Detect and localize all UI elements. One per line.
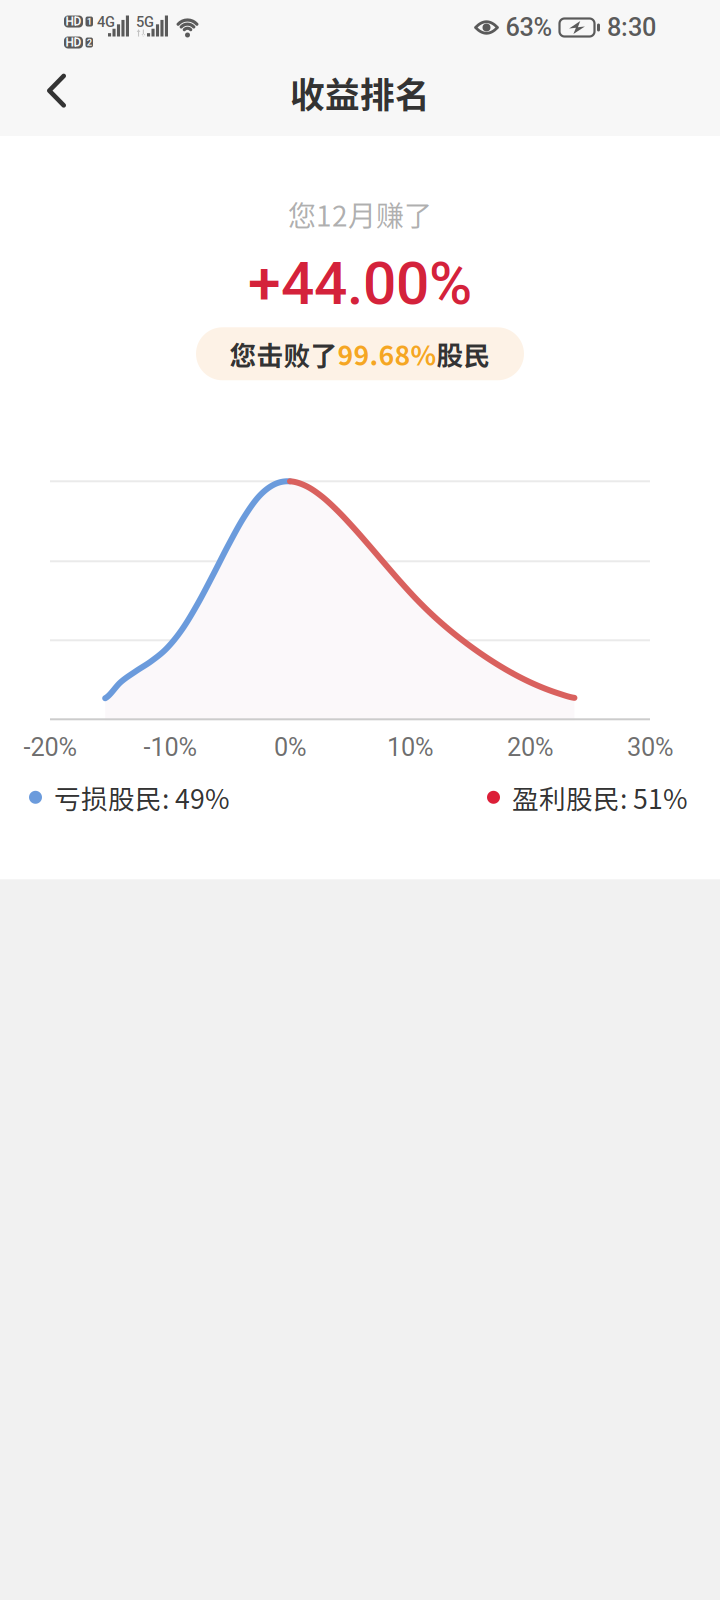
staticText: 盈利股民: 51% bbox=[512, 778, 688, 817]
staticText: 2 bbox=[87, 37, 92, 48]
staticText: 63% bbox=[505, 12, 552, 42]
staticText: 您12月赚了 bbox=[288, 194, 432, 234]
staticText: 30% bbox=[627, 732, 674, 762]
staticText: -20% bbox=[23, 732, 77, 762]
staticText: -10% bbox=[143, 732, 197, 762]
staticText: 20% bbox=[507, 732, 554, 762]
staticText: HD bbox=[65, 14, 81, 29]
staticText: 股民 bbox=[436, 334, 490, 373]
staticText: 您击败了 bbox=[229, 334, 337, 373]
button[interactable]: Back bbox=[0, 59, 102, 133]
staticText: 99.68% bbox=[337, 334, 436, 373]
staticText: +44.00% bbox=[248, 249, 472, 318]
staticText: 收益排名 bbox=[290, 68, 430, 118]
staticText: 5G bbox=[136, 13, 154, 31]
staticText: 10% bbox=[387, 732, 434, 762]
staticText: HD bbox=[65, 35, 81, 50]
staticText: 1 bbox=[87, 16, 92, 27]
staticText: 8:30 bbox=[607, 12, 656, 42]
staticText: 4G bbox=[97, 13, 115, 31]
staticText: 亏损股民: 49% bbox=[54, 778, 230, 817]
staticText: 0% bbox=[274, 732, 307, 762]
